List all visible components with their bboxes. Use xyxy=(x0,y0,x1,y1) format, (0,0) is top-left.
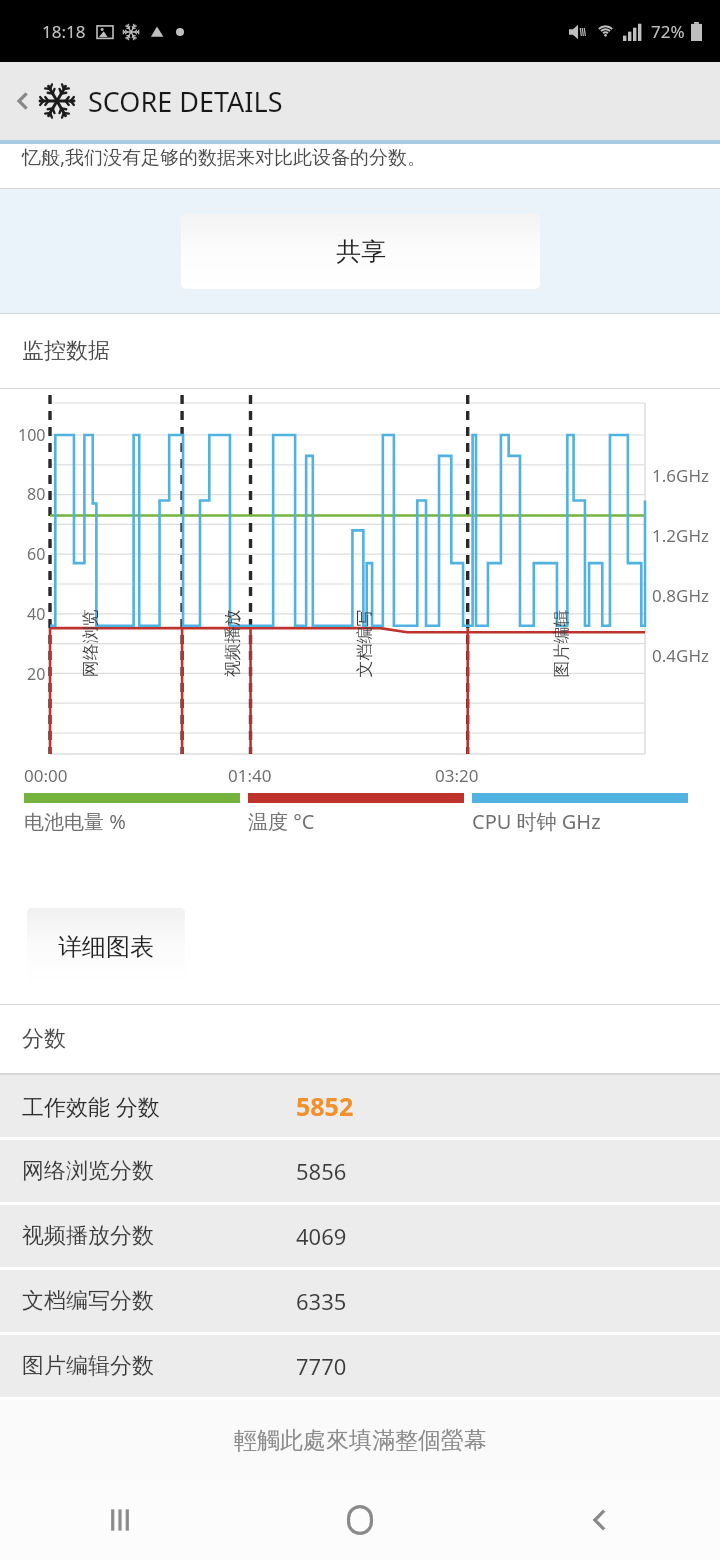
staticText: 电池电量 % xyxy=(24,808,126,835)
staticText: 1.6GHz xyxy=(652,464,709,487)
staticText: 网络浏览分数 xyxy=(22,1157,242,1185)
staticText: 视频播放分数 xyxy=(22,1222,242,1250)
staticText: 工作效能 分数 xyxy=(22,1091,242,1121)
staticText: 100 xyxy=(18,424,46,446)
staticText: 文档编写分数 xyxy=(22,1287,242,1315)
staticText: 1.2GHz xyxy=(652,524,709,547)
button[interactable]: Home xyxy=(240,1480,480,1560)
button[interactable]: 工作效能 分数 xyxy=(0,1075,720,1137)
staticText: 輕觸此處來填滿整個螢幕 xyxy=(234,1426,487,1455)
staticText: 0.4GHz xyxy=(652,644,709,667)
staticText: 监控数据 xyxy=(22,337,110,365)
staticText: 60 xyxy=(27,543,46,565)
staticText: 分数 xyxy=(22,1025,66,1053)
staticText: SCORE DETAILS xyxy=(88,83,283,120)
staticText: 文档编写 xyxy=(353,609,374,677)
button[interactable]: 视频播放分数 xyxy=(0,1205,720,1267)
button[interactable]: 輕觸此處來填滿整個螢幕 xyxy=(0,1400,720,1480)
staticText: 温度 °C xyxy=(248,808,315,835)
button[interactable]: 网络浏览分数 xyxy=(0,1140,720,1202)
staticText: 40 xyxy=(27,603,46,625)
staticText: 图片编辑分数 xyxy=(22,1352,242,1380)
staticText: 00:00 xyxy=(24,764,68,787)
staticText: 01:40 xyxy=(228,764,272,787)
staticText: 18:18 xyxy=(42,20,86,43)
staticText: 03:20 xyxy=(435,764,479,787)
staticText: 共享 xyxy=(336,236,386,267)
staticText: 20 xyxy=(27,663,46,685)
staticText: 5852 xyxy=(296,1089,354,1123)
button[interactable]: Back xyxy=(6,84,40,118)
staticText: 4069 xyxy=(296,1221,347,1251)
staticText: 6335 xyxy=(296,1286,347,1316)
button[interactable]: Back xyxy=(480,1480,720,1560)
staticText: 忆般,我们没有足够的数据来对比此设备的分数。 xyxy=(22,144,427,170)
staticText: 视频播放 xyxy=(221,609,242,677)
button[interactable]: 共享 xyxy=(181,213,540,289)
staticText: 图片编辑 xyxy=(550,609,571,677)
staticText: 网络浏览 xyxy=(79,609,100,677)
staticText: CPU 时钟 GHz xyxy=(472,808,601,835)
button[interactable]: 图片编辑分数 xyxy=(0,1335,720,1397)
button[interactable]: Recent apps xyxy=(0,1480,240,1560)
button[interactable]: 详细图表 xyxy=(27,908,185,986)
staticText: 7770 xyxy=(296,1351,347,1381)
staticText: 详细图表 xyxy=(58,932,154,962)
staticText: 80 xyxy=(27,483,46,505)
staticText: 0.8GHz xyxy=(652,584,709,607)
button[interactable]: 文档编写分数 xyxy=(0,1270,720,1332)
staticText: 5856 xyxy=(296,1156,347,1186)
staticText: 72% xyxy=(651,20,685,43)
